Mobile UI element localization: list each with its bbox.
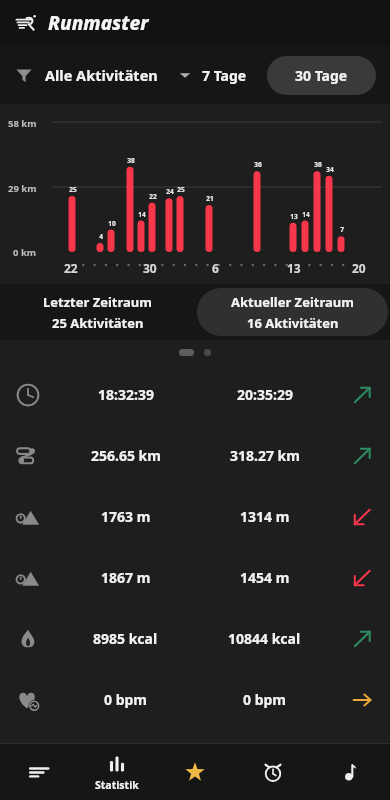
staticText: 1314 m [240,507,290,526]
button[interactable]: 7 Tage [192,58,257,93]
other: Runmaster logo [14,11,38,35]
button[interactable]: 1867 m [0,547,390,608]
button[interactable]: Aktueller Zeitraum [197,288,388,336]
staticText: 20:35:29 [237,385,293,404]
staticText: Letzter Zeitraum [43,293,152,311]
button[interactable]: Liste [0,744,78,800]
staticText: 1867 m [101,568,151,587]
staticText: 25 [175,185,187,194]
staticText: 24 [164,187,176,196]
staticText: 6 [212,260,219,276]
staticText: 18:32:39 [98,385,154,404]
staticText: Aktueller Zeitraum [231,293,354,311]
staticText: 0 bpm [104,690,147,709]
staticText: 38 [125,156,137,165]
staticText: 10 [106,219,118,228]
staticText: 30 [143,260,157,276]
staticText: 1763 m [101,507,151,526]
staticText: 13 [288,212,300,221]
staticText: 36 [312,160,324,169]
staticText: 7 Tage [202,66,247,85]
button[interactable]: Statistik [78,744,156,800]
staticText: 0 km [13,246,37,259]
button[interactable]: 1763 m [0,486,390,547]
staticText: 256.65 km [91,446,161,465]
staticText: 318.27 km [230,446,300,465]
button[interactable]: Alle Aktivitäten [14,59,192,91]
staticText: 7 [336,225,348,234]
button[interactable]: 30 Tage [267,56,376,95]
staticText: 36 [252,160,264,169]
staticText: 8985 kcal [93,629,158,648]
button[interactable]: 256.65 km [0,425,390,486]
staticText: Statistik [95,778,139,792]
staticText: 34 [324,165,336,174]
staticText: 16 Aktivitäten [247,314,339,332]
staticText: 20 [352,260,366,276]
staticText: 58 km [8,117,37,130]
staticText: 22 [64,260,78,276]
button[interactable]: 0 bpm [0,669,390,730]
staticText: 0 bpm [243,690,286,709]
button[interactable]: Favoriten [156,744,234,800]
staticText: 25 [67,185,79,194]
button[interactable]: 8985 kcal [0,608,390,669]
staticText: 10844 kcal [228,629,301,648]
staticText: 22 [147,192,159,201]
staticText: 14 [136,210,148,219]
staticText: 25 Aktivitäten [52,314,144,332]
staticText: 4 [95,232,107,241]
button[interactable]: 18:32:39 [0,364,390,425]
button[interactable]: Letzter Zeitraum [0,284,195,340]
staticText: 1454 m [240,568,290,587]
button[interactable]: Musik [312,744,390,800]
staticText: 29 km [8,182,37,195]
staticText: 13 [287,260,301,276]
staticText: Alle Aktivitäten [45,65,158,85]
staticText: Runmaster [48,10,149,36]
staticText: 21 [204,194,216,203]
staticText: 14 [300,210,312,219]
button[interactable]: Wecker [234,744,312,800]
staticText: 30 Tage [295,66,348,85]
